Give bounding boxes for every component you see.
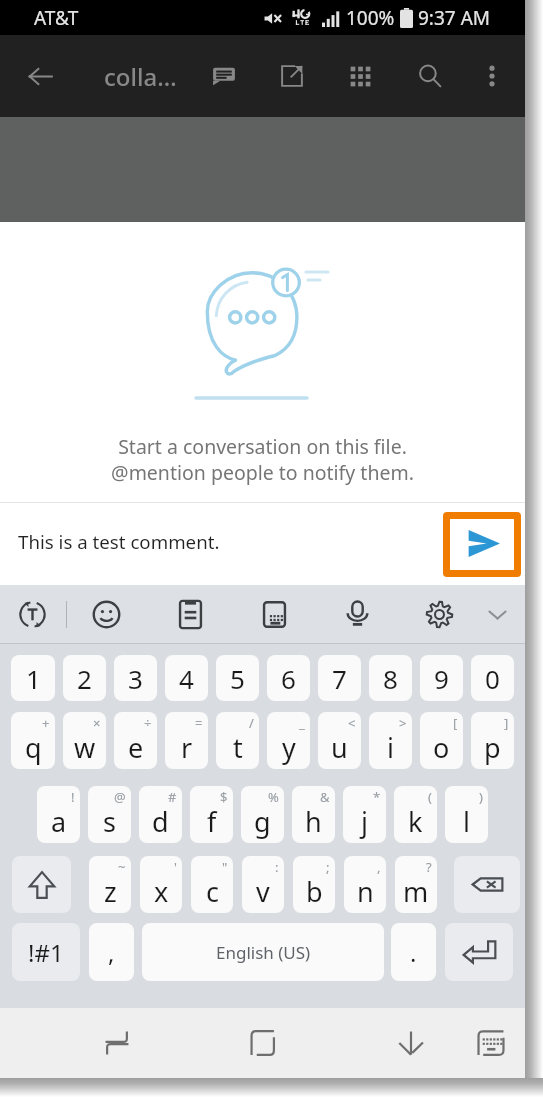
staticText: n (357, 873, 374, 910)
staticText: , (377, 858, 381, 876)
button[interactable]: Apps (331, 35, 389, 117)
button[interactable]: , (344, 856, 386, 913)
staticText: This is a test comment. (18, 529, 443, 554)
button[interactable]: 7 (318, 655, 361, 701)
button[interactable]: 1 (11, 655, 55, 701)
button[interactable]: & (292, 786, 335, 843)
button[interactable]: / (216, 712, 259, 769)
button[interactable]: ? (395, 856, 437, 913)
staticText: l (463, 803, 470, 840)
button[interactable]: Voice input (335, 585, 379, 644)
button[interactable]: @ (88, 786, 131, 843)
button[interactable]: : (242, 856, 284, 913)
button[interactable]: !#1 (12, 923, 80, 981)
staticText: / (249, 714, 254, 732)
button[interactable]: Backspace (454, 856, 520, 913)
staticText: * (373, 788, 381, 806)
staticText: < (348, 714, 356, 732)
button[interactable]: ) (445, 786, 488, 843)
staticText: ~ (118, 858, 126, 876)
staticText: f (207, 803, 217, 840)
button[interactable]: ( (394, 786, 437, 843)
button[interactable]: [ (420, 712, 463, 769)
staticText: 3 (128, 661, 143, 696)
button[interactable]: Keyboard layout (252, 585, 296, 644)
staticText: _ (299, 714, 305, 732)
button[interactable]: > (369, 712, 412, 769)
staticText: y (282, 729, 296, 766)
button[interactable]: Shift (12, 856, 71, 913)
button[interactable]: Back (8, 35, 72, 117)
button[interactable]: 4 (165, 655, 208, 701)
button[interactable]: 9 (420, 655, 463, 701)
button[interactable]: * (343, 786, 386, 843)
staticText: ( (428, 788, 432, 806)
button[interactable]: ] (471, 712, 514, 769)
staticText: . (410, 936, 417, 969)
button[interactable]: Send (450, 519, 514, 570)
button[interactable]: Open in new (263, 35, 321, 117)
staticText: v (256, 873, 270, 910)
staticText: c (206, 873, 219, 910)
staticText: ! (71, 788, 75, 806)
staticText: 8 (383, 661, 398, 696)
button[interactable]: Back (384, 1015, 438, 1071)
staticText: ] (504, 714, 509, 732)
button[interactable]: Home (236, 1015, 290, 1071)
button[interactable]: Enter (445, 923, 513, 981)
staticText: + (42, 714, 50, 732)
staticText: AT&T (34, 5, 79, 31)
button[interactable]: _ (267, 712, 310, 769)
button[interactable]: Switch keyboard (464, 1015, 518, 1071)
button[interactable]: Emoji (84, 585, 128, 644)
button[interactable]: ! (37, 786, 80, 843)
button[interactable]: % (241, 786, 284, 843)
staticText: 9:37 AM (418, 5, 491, 31)
button[interactable]: ÷ (114, 712, 157, 769)
button[interactable]: More options (463, 35, 521, 117)
staticText: % (268, 788, 279, 806)
button[interactable]: Comments (195, 35, 253, 117)
staticText: 6 (281, 661, 296, 696)
button[interactable]: < (318, 712, 361, 769)
button[interactable]: 8 (369, 655, 412, 701)
button[interactable]: ~ (89, 856, 131, 913)
button[interactable]: = (165, 712, 208, 769)
staticText: ) (479, 788, 483, 806)
button[interactable]: $ (190, 786, 233, 843)
button[interactable]: + (11, 712, 55, 769)
staticText: @ (114, 788, 126, 806)
button[interactable]: Search (401, 35, 459, 117)
staticText: q (25, 729, 42, 766)
staticText: 7 (332, 661, 347, 696)
button[interactable]: 5 (216, 655, 259, 701)
staticText: t (233, 729, 243, 766)
staticText: : (275, 858, 279, 876)
staticText: z (104, 873, 117, 910)
button[interactable]: Recent apps (90, 1015, 144, 1071)
button[interactable]: Collapse keyboard (475, 585, 519, 644)
button[interactable]: . (391, 923, 436, 981)
button[interactable]: , (89, 923, 134, 981)
staticText: , (108, 936, 115, 969)
staticText: ' (174, 858, 177, 876)
button[interactable]: × (63, 712, 106, 769)
button[interactable]: Clipboard (168, 585, 212, 644)
button[interactable]: # (139, 786, 182, 843)
button[interactable]: ' (140, 856, 182, 913)
staticText: s (103, 803, 116, 840)
staticText: ? (426, 858, 432, 876)
staticText: # (168, 788, 177, 806)
button[interactable]: ; (293, 856, 335, 913)
staticText: h (305, 803, 322, 840)
button[interactable]: Translate (10, 585, 54, 644)
button[interactable]: " (191, 856, 233, 913)
staticText: g (254, 803, 271, 840)
button[interactable]: 2 (63, 655, 106, 701)
button[interactable]: 3 (114, 655, 157, 701)
button[interactable]: English (US) (142, 923, 384, 981)
button[interactable]: Settings (417, 585, 461, 644)
staticText: Start a conversation on this file. (118, 433, 407, 460)
button[interactable]: 6 (267, 655, 310, 701)
button[interactable]: 0 (471, 655, 514, 701)
